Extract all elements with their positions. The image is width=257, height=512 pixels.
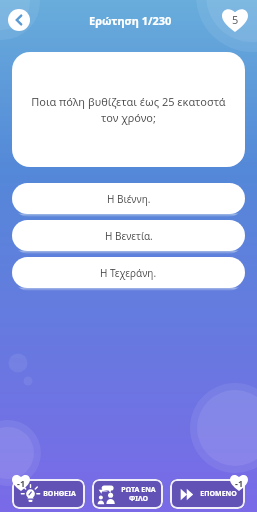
button[interactable]: Η Τεχεράνη.	[12, 257, 245, 288]
staticText: Η Τεχεράνη.	[100, 266, 157, 280]
staticText: Η Βενετία.	[105, 229, 153, 243]
staticText: Η Βιέννη.	[107, 192, 151, 206]
button[interactable]: ΡΩΤΑ ΕΝΑ ΦΙΛΟ	[92, 479, 163, 509]
staticText: Ερώτηση 1/230	[89, 13, 172, 28]
button[interactable]: Lives	[222, 8, 248, 32]
staticText: ΒΟΗΘΕΙΑ	[43, 489, 76, 499]
staticText: ΕΠΟΜΕΝΟ	[200, 489, 237, 499]
button[interactable]: Back	[8, 9, 30, 31]
staticText: -1	[235, 477, 244, 489]
staticText: 5	[232, 12, 239, 27]
staticText: ΡΩΤΑ ΕΝΑ ΦΙΛΟ	[121, 485, 156, 503]
button[interactable]: ΒΟΗΘΕΙΑ	[12, 479, 85, 509]
button[interactable]: Η Βενετία.	[12, 220, 245, 251]
button[interactable]: ΕΠΟΜΕΝΟ	[170, 479, 245, 509]
button[interactable]: Η Βιέννη.	[12, 183, 245, 214]
staticText: -1	[17, 477, 26, 489]
staticText: Ποια πόλη βυθίζεται έως 25 εκατοστά τον …	[30, 94, 227, 125]
